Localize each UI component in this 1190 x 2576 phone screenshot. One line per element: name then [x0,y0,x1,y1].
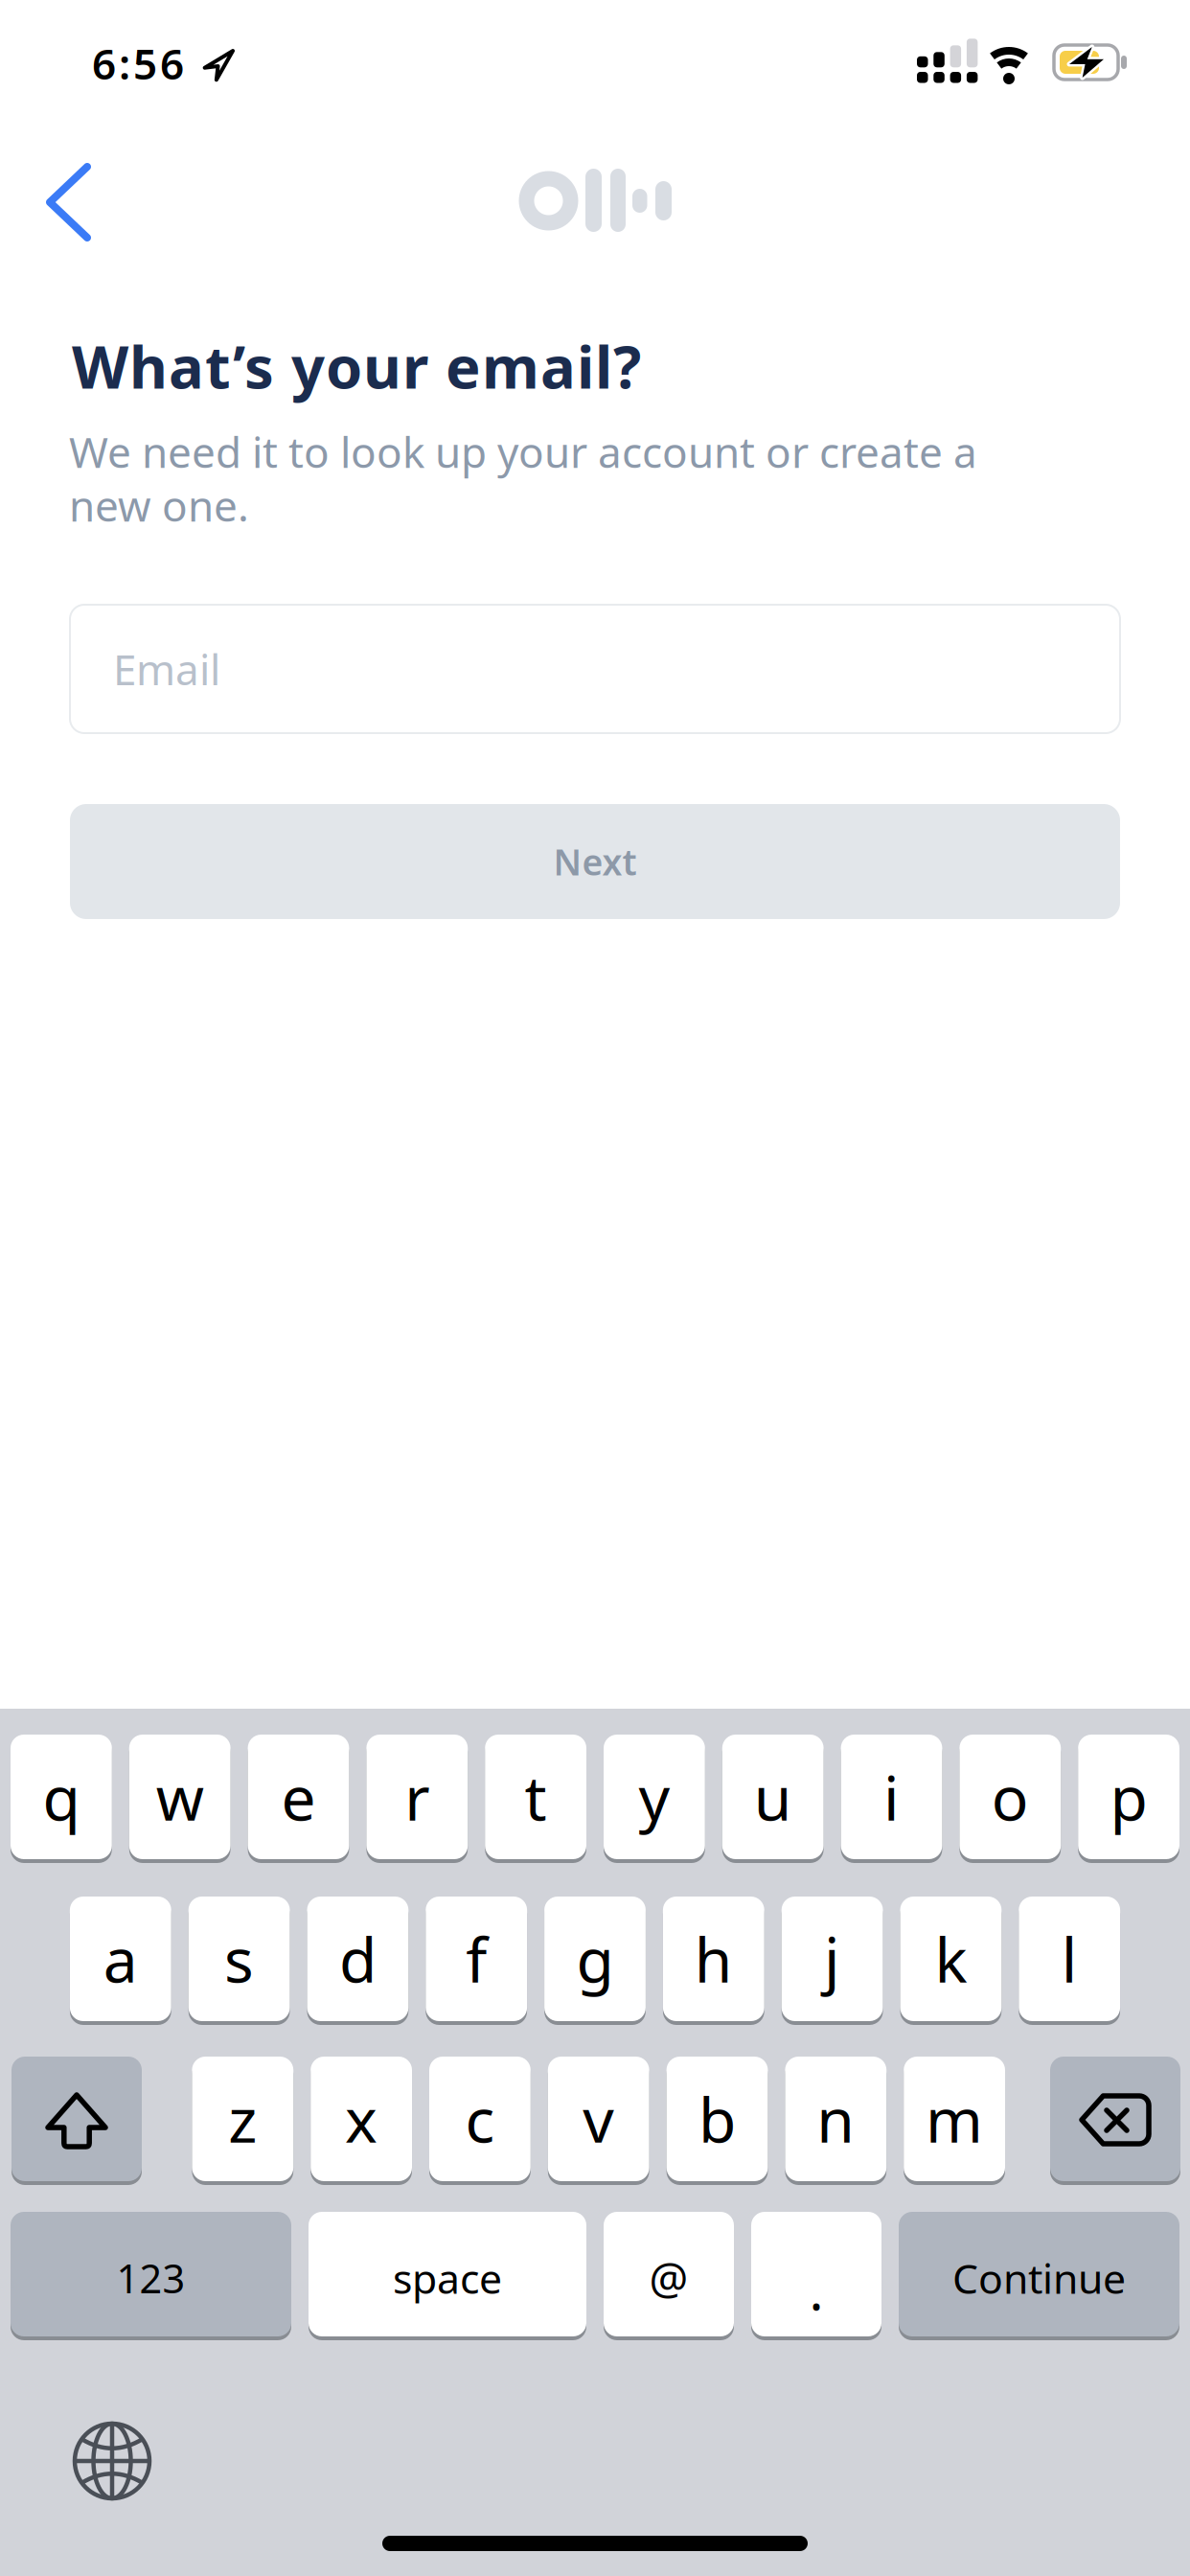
staticText: q [43,1756,80,1838]
button[interactable]: p [1078,1735,1179,1863]
button[interactable]: w [129,1735,231,1863]
staticText: a [103,1918,138,2000]
button[interactable]: g [544,1897,646,2025]
staticText: s [224,1918,254,2000]
staticText: y [638,1756,670,1838]
button[interactable]: Shift [11,2057,142,2185]
staticText: space [393,2251,502,2305]
button[interactable]: d [307,1897,408,2025]
button[interactable]: Continue [899,2212,1179,2340]
button[interactable]: Delete [1050,2057,1180,2185]
button[interactable]: space [309,2212,586,2340]
button[interactable]: n [785,2057,886,2185]
staticText: k [935,1918,967,2000]
button[interactable]: y [604,1735,705,1863]
staticText: h [694,1918,733,2000]
staticText: g [576,1918,614,2000]
button[interactable]: o [959,1735,1061,1863]
button[interactable]: Next keyboard [75,2424,149,2498]
staticText: @ [649,2249,688,2307]
button[interactable]: h [663,1897,764,2025]
staticText: c [465,2078,495,2160]
button[interactable]: j [782,1897,883,2025]
staticText: e [281,1756,316,1838]
button[interactable]: r [366,1735,468,1863]
staticText: w [156,1756,204,1838]
staticText: b [698,2078,736,2160]
button[interactable]: v [548,2057,649,2185]
button[interactable]: Next [70,804,1120,919]
staticText: d [339,1918,376,2000]
button[interactable]: z [192,2057,293,2185]
button[interactable]: Back [50,167,87,238]
button[interactable]: b [666,2057,768,2185]
staticText: u [754,1756,792,1838]
staticText: z [228,2078,257,2160]
staticText: p [1110,1756,1147,1838]
staticText: i [883,1756,900,1838]
button[interactable]: e [248,1735,349,1863]
staticText: v [583,2078,614,2160]
staticText: t [525,1756,547,1838]
staticText: j [824,1918,840,2000]
button[interactable]: s [188,1897,290,2025]
staticText: 123 [116,2252,185,2304]
staticText: l [1061,1918,1078,2000]
button[interactable]: k [900,1897,1002,2025]
staticText: Email [113,641,220,697]
staticText: f [466,1918,487,2000]
button[interactable]: @ [604,2212,734,2340]
button[interactable]: m [904,2057,1005,2185]
button[interactable]: x [311,2057,412,2185]
button[interactable]: t [485,1735,586,1863]
staticText: . [809,2254,824,2325]
staticText: r [405,1756,430,1838]
button[interactable]: q [11,1735,112,1863]
button[interactable]: Email [70,605,1120,733]
staticText: o [991,1756,1029,1838]
staticText: new one. [69,477,249,533]
button[interactable]: . [751,2212,881,2340]
button[interactable]: i [841,1735,942,1863]
button[interactable]: u [722,1735,824,1863]
staticText: Next [553,838,637,885]
staticText: m [926,2078,983,2160]
staticText: What’s your email? [72,327,641,405]
staticText: n [817,2078,855,2160]
button[interactable]: f [426,1897,527,2025]
staticText: 6:56 [92,35,184,91]
staticText: We need it to look up your account or cr… [69,424,977,480]
button[interactable]: l [1019,1897,1120,2025]
button[interactable]: 123 [11,2212,291,2340]
staticText: x [345,2078,378,2160]
button[interactable]: a [70,1897,171,2025]
button[interactable]: c [429,2057,531,2185]
staticText: Continue [952,2251,1126,2305]
